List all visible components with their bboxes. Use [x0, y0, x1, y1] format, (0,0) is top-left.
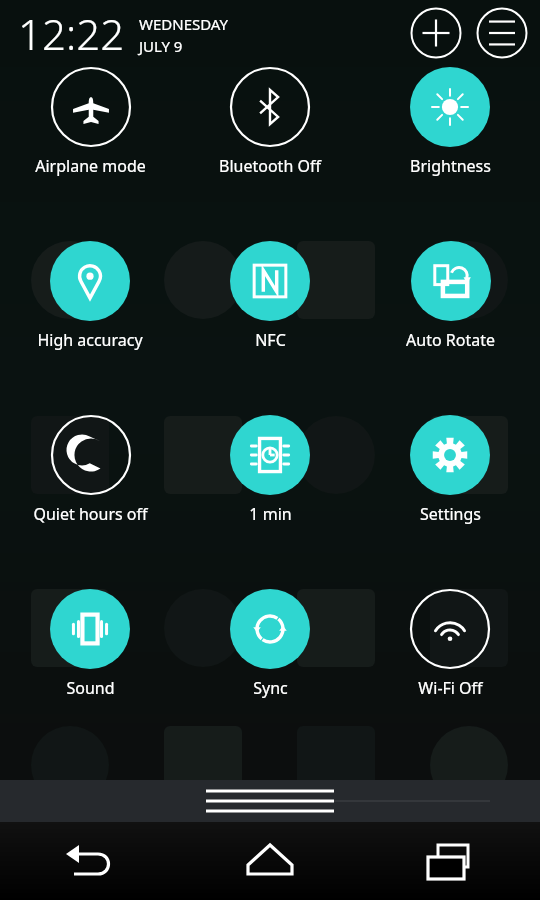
button[interactable]: Menu [474, 5, 530, 61]
staticText: Bluetooth Off [219, 155, 321, 177]
button[interactable]: Add tile [408, 5, 464, 61]
staticText: Auto Rotate [406, 329, 495, 351]
staticText: Sound [66, 677, 115, 699]
button[interactable]: Quiet hours off [33, 414, 148, 525]
staticText: Airplane mode [35, 155, 146, 177]
staticText: Settings [420, 503, 481, 525]
staticText: Wi-Fi Off [418, 677, 483, 699]
staticText: JULY 9 [139, 36, 183, 56]
button[interactable]: Bluetooth Off [219, 66, 321, 177]
button[interactable]: Sound [49, 588, 131, 699]
staticText: Brightness [410, 155, 491, 177]
button[interactable]: NFC [229, 240, 311, 351]
button[interactable]: Settings [409, 414, 491, 525]
button[interactable]: Sync [229, 588, 311, 699]
staticText: Quiet hours off [33, 503, 148, 525]
button[interactable]: Recent apps [360, 822, 540, 900]
button[interactable]: Airplane mode [35, 66, 146, 177]
button[interactable]: Drag handle [0, 780, 540, 822]
staticText: WEDNESDAY [139, 14, 229, 34]
button[interactable]: Wi-Fi Off [409, 588, 491, 699]
staticText: High accuracy [37, 329, 143, 351]
staticText: 1 min [249, 503, 292, 525]
staticText: NFC [255, 329, 286, 351]
staticText: Sync [253, 677, 288, 699]
staticText: 12:22 [18, 5, 125, 62]
button[interactable]: Brightness [409, 66, 491, 177]
button[interactable]: Auto Rotate [406, 240, 495, 351]
button[interactable]: Home [180, 822, 360, 900]
button[interactable]: High accuracy [37, 240, 143, 351]
button[interactable]: Back [0, 822, 180, 900]
button[interactable]: 1 min [229, 414, 311, 525]
